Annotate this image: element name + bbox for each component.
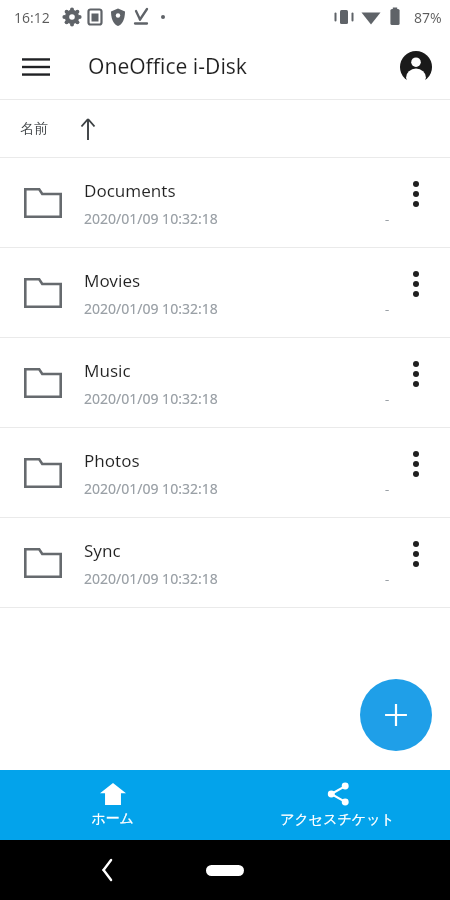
staticText: Music: [84, 359, 131, 382]
staticText: Photos: [84, 449, 140, 472]
staticText: -: [385, 300, 390, 318]
staticText: 16:12: [14, 8, 50, 27]
button[interactable]: More options for Photos: [398, 446, 434, 482]
staticText: -: [385, 210, 390, 228]
button[interactable]: ホーム: [0, 770, 225, 840]
staticText: 2020/01/09 10:32:18: [84, 209, 218, 228]
button[interactable]: Home: [206, 865, 244, 876]
button[interactable]: Sync: [0, 518, 450, 607]
button[interactable]: More options for Sync: [398, 536, 434, 572]
button[interactable]: Sort ascending: [76, 117, 100, 141]
staticText: 2020/01/09 10:32:18: [84, 389, 218, 408]
button[interactable]: Open navigation menu: [8, 39, 64, 95]
staticText: 2020/01/09 10:32:18: [84, 299, 218, 318]
staticText: ホーム: [91, 810, 134, 828]
button[interactable]: More options for Music: [398, 356, 434, 392]
button[interactable]: Photos: [0, 428, 450, 517]
button[interactable]: アクセスチケット: [225, 770, 450, 840]
button[interactable]: Movies: [0, 248, 450, 337]
staticText: Movies: [84, 269, 141, 292]
staticText: 2020/01/09 10:32:18: [84, 569, 218, 588]
staticText: 名前: [20, 120, 48, 138]
button[interactable]: Documents: [0, 158, 450, 247]
staticText: -: [385, 480, 390, 498]
staticText: -: [385, 570, 390, 588]
button[interactable]: Music: [0, 338, 450, 427]
staticText: -: [385, 390, 390, 408]
button[interactable]: Account: [392, 43, 440, 91]
button[interactable]: More options for Movies: [398, 266, 434, 302]
staticText: 87%: [414, 8, 442, 27]
staticText: OneOffice i-Disk: [88, 52, 248, 81]
button[interactable]: Back: [88, 850, 128, 890]
staticText: Documents: [84, 179, 176, 202]
button[interactable]: 名前: [20, 120, 48, 138]
button[interactable]: More options for Documents: [398, 176, 434, 212]
staticText: 2020/01/09 10:32:18: [84, 479, 218, 498]
staticText: Sync: [84, 539, 121, 562]
button[interactable]: Add: [360, 679, 432, 751]
staticText: アクセスチケット: [280, 811, 395, 829]
